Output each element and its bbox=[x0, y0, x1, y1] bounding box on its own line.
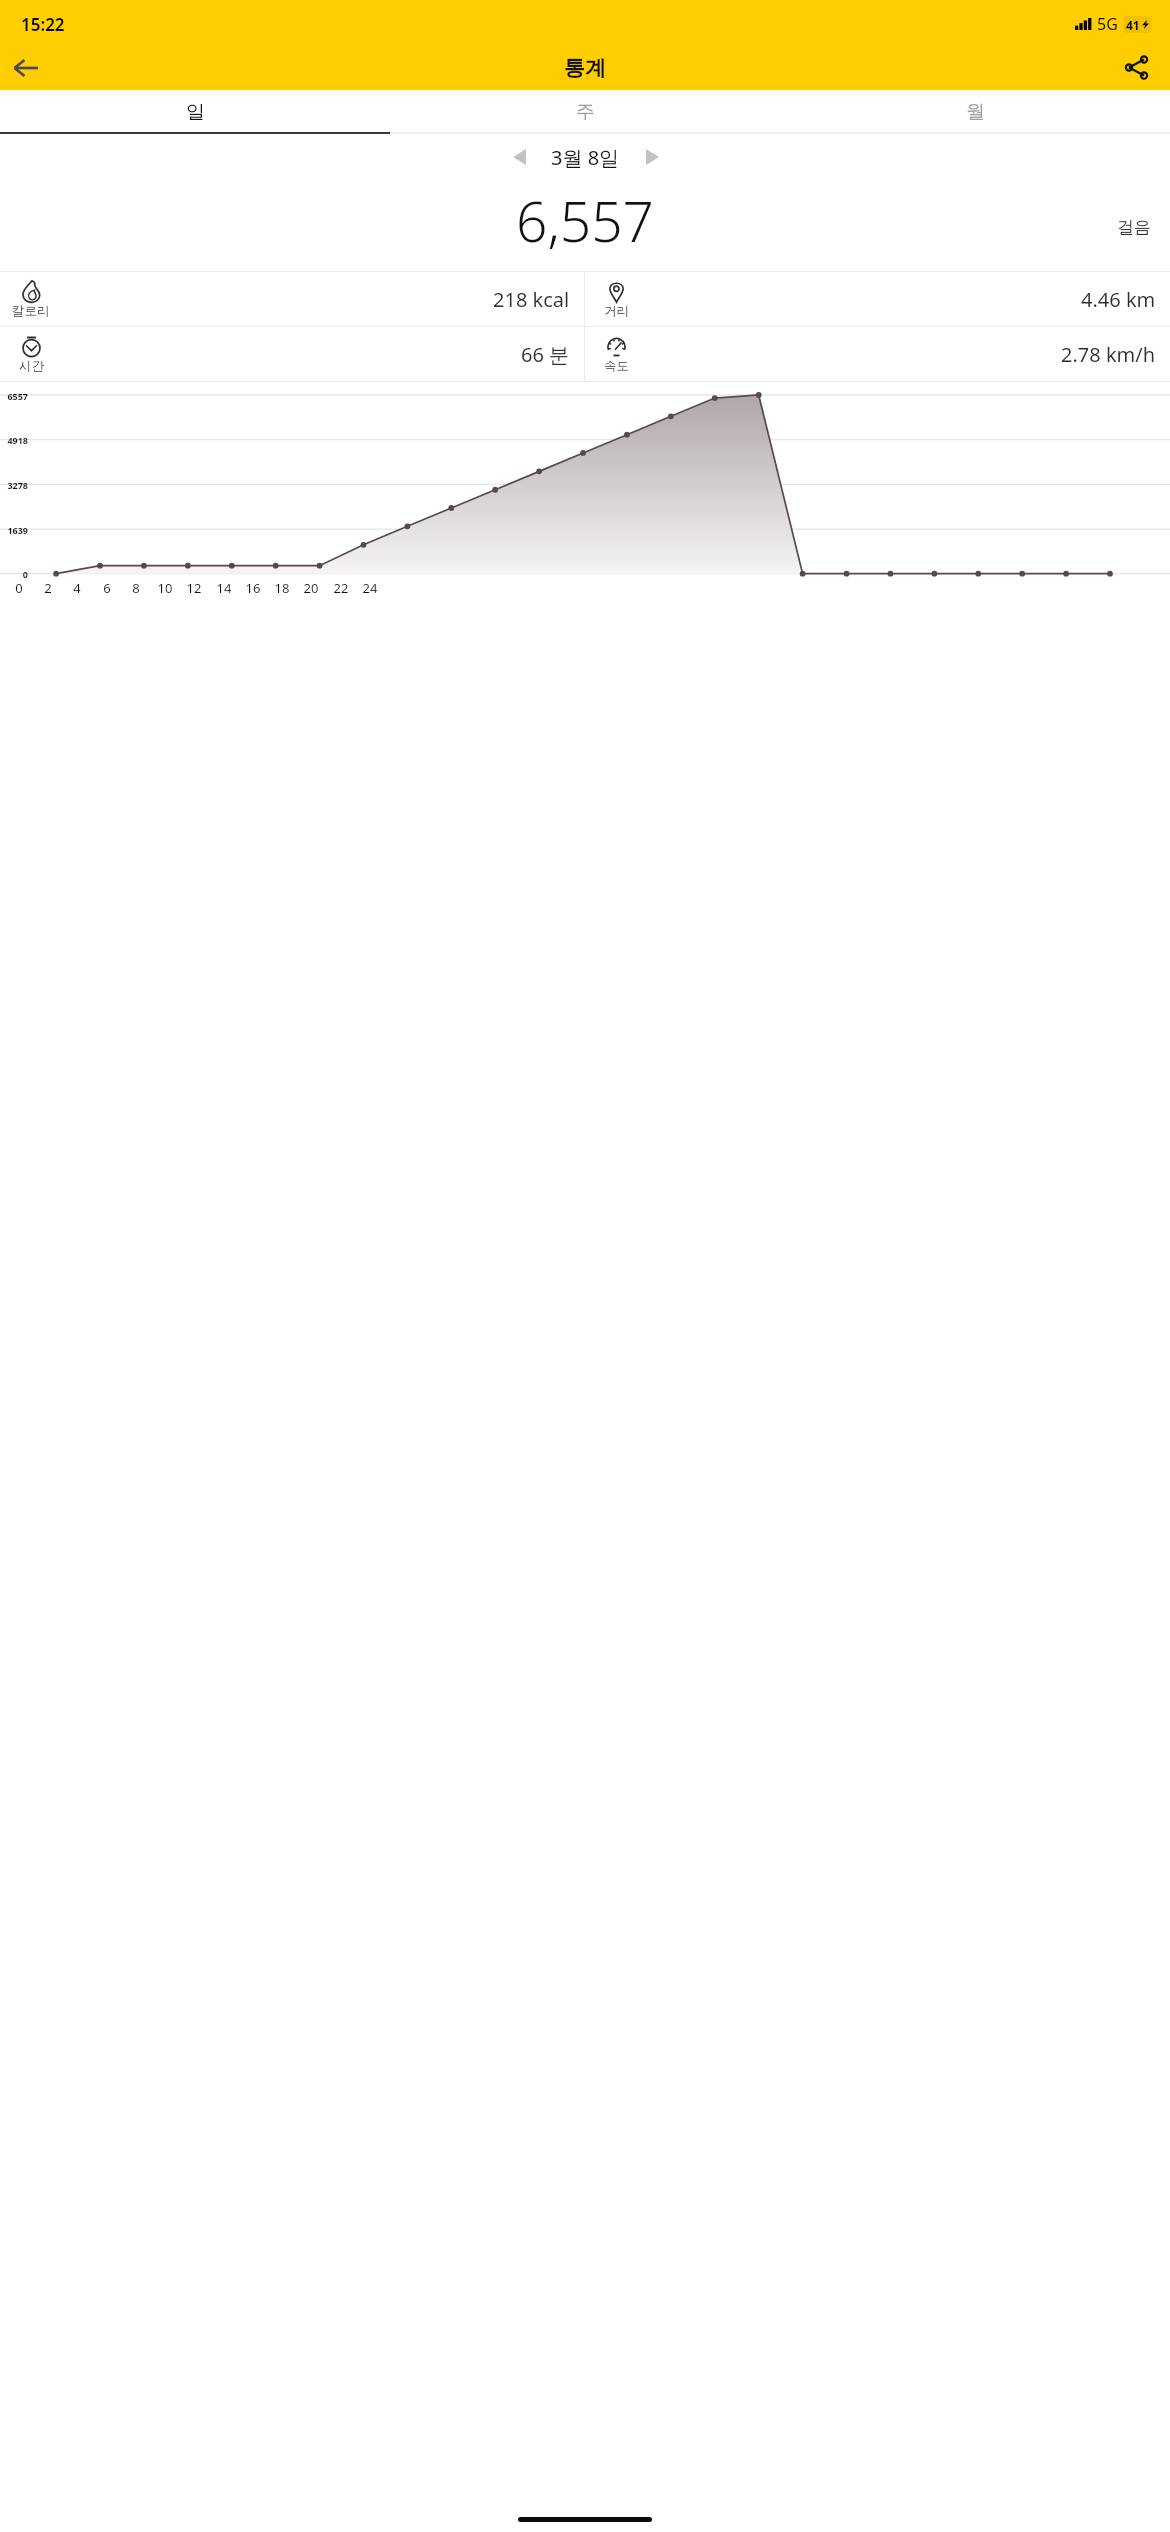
button[interactable]: 거리 bbox=[585, 272, 1170, 326]
staticText: 거리 bbox=[604, 303, 629, 319]
staticText: 6557 bbox=[2, 390, 28, 402]
staticText: 주 bbox=[576, 100, 595, 124]
staticText: 통계 bbox=[564, 55, 606, 81]
staticText: 3월 8일 bbox=[551, 144, 620, 171]
button[interactable]: 주 bbox=[390, 90, 780, 134]
staticText: 41 bbox=[1126, 17, 1140, 33]
staticText: 22 bbox=[329, 579, 353, 597]
staticText: 24 bbox=[358, 579, 382, 597]
staticText: 6 bbox=[95, 579, 119, 597]
staticText: 월 bbox=[966, 100, 985, 124]
staticText: 4 bbox=[65, 579, 89, 597]
staticText: 15:22 bbox=[21, 13, 65, 36]
staticText: 칼로리 bbox=[12, 303, 50, 319]
button[interactable]: 월 bbox=[780, 90, 1170, 134]
staticText: 일 bbox=[186, 100, 205, 124]
staticText: 2.78 km/h bbox=[1061, 341, 1156, 368]
staticText: 2 bbox=[36, 579, 60, 597]
staticText: 16 bbox=[241, 579, 265, 597]
staticText: 20 bbox=[299, 579, 323, 597]
staticText: 1639 bbox=[2, 524, 28, 536]
staticText: 218 kcal bbox=[493, 286, 570, 313]
button[interactable]: Previous day bbox=[497, 135, 541, 179]
button[interactable]: Share bbox=[1112, 45, 1160, 90]
staticText: 10 bbox=[153, 579, 177, 597]
staticText: 0 bbox=[2, 568, 28, 580]
staticText: 12 bbox=[182, 579, 206, 597]
staticText: 시간 bbox=[19, 358, 44, 374]
staticText: 66 분 bbox=[521, 341, 570, 368]
staticText: 4918 bbox=[2, 434, 28, 446]
staticText: 8 bbox=[124, 579, 148, 597]
staticText: 5G bbox=[1097, 13, 1118, 35]
button[interactable]: 시간 bbox=[0, 327, 584, 381]
button[interactable]: 일 bbox=[0, 90, 390, 134]
button[interactable]: Next day bbox=[630, 135, 674, 179]
staticText: 6,557 bbox=[516, 183, 654, 258]
button[interactable]: 속도 bbox=[585, 327, 1170, 381]
staticText: 3278 bbox=[2, 479, 28, 491]
staticText: 14 bbox=[212, 579, 236, 597]
staticText: 4.46 km bbox=[1081, 286, 1156, 313]
staticText: 걸음 bbox=[1117, 217, 1151, 238]
button[interactable]: 칼로리 bbox=[0, 272, 584, 326]
staticText: 18 bbox=[270, 579, 294, 597]
staticText: 속도 bbox=[604, 358, 629, 374]
staticText: 0 bbox=[7, 579, 31, 597]
button[interactable]: Back bbox=[2, 45, 50, 90]
